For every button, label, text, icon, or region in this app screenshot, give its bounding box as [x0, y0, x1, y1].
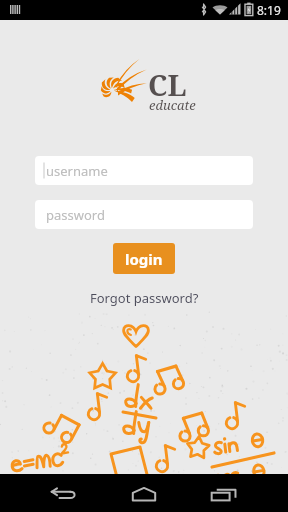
button[interactable]: username — [35, 156, 253, 185]
staticText: login — [125, 249, 163, 269]
button[interactable]: Back — [37, 474, 91, 512]
button[interactable]: Forgot password? — [86, 285, 203, 311]
button[interactable]: password — [35, 200, 253, 229]
staticText: CL — [148, 65, 187, 104]
staticText: password — [46, 206, 105, 224]
staticText: educate — [149, 96, 196, 114]
staticText: 8:19 — [257, 2, 281, 18]
staticText: username — [46, 162, 108, 180]
button[interactable]: login — [113, 243, 175, 274]
button[interactable]: Home — [117, 474, 171, 512]
button[interactable]: Recents — [197, 474, 251, 512]
